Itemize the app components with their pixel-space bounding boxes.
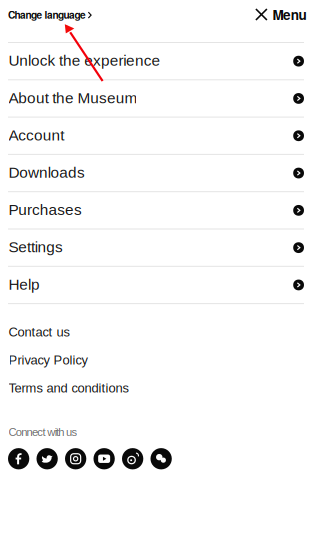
button[interactable]: Account — [0, 118, 313, 155]
button[interactable]: Facebook — [8, 448, 29, 469]
button[interactable]: Purchases — [0, 192, 313, 229]
staticText: Connect with us — [8, 426, 77, 438]
staticText: Contact us — [8, 325, 69, 339]
staticText: Purchases — [8, 201, 82, 218]
button[interactable]: YouTube — [93, 448, 115, 469]
staticText: Settings — [8, 238, 63, 256]
button[interactable]: Twitter — [36, 448, 58, 469]
staticText: Change language — [8, 7, 86, 22]
button[interactable]: Unlock the experience — [0, 43, 313, 80]
staticText: Terms and conditions — [8, 381, 128, 395]
button[interactable]: Help — [0, 267, 313, 304]
button[interactable]: Contact us — [0, 318, 313, 346]
button[interactable]: Terms and conditions — [0, 374, 313, 402]
button[interactable]: Weibo — [122, 448, 143, 469]
staticText: About the Museum — [8, 89, 137, 106]
button[interactable]: Privacy Policy — [0, 346, 313, 374]
button[interactable]: WeChat — [150, 448, 172, 469]
staticText: Account — [8, 127, 64, 144]
staticText: Menu — [272, 5, 306, 24]
button[interactable]: About the Museum — [0, 80, 313, 118]
button[interactable]: Settings — [0, 229, 313, 267]
button[interactable]: Menu — [250, 0, 313, 29]
staticText: Downloads — [8, 164, 85, 181]
button[interactable]: Change language — [0, 0, 98, 29]
staticText: Privacy Policy — [8, 353, 87, 367]
staticText: Unlock the experience — [8, 52, 160, 69]
button[interactable]: Instagram — [65, 448, 86, 469]
button[interactable]: Downloads — [0, 155, 313, 192]
staticText: Help — [8, 276, 40, 293]
